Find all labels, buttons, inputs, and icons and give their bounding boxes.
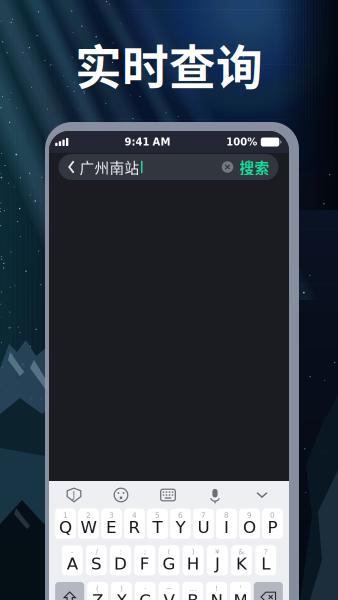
staticText: ¥ <box>215 547 220 556</box>
staticText: P <box>267 517 277 537</box>
staticText: / <box>95 547 97 556</box>
staticText: Z <box>92 591 103 600</box>
button[interactable]: 5 <box>147 509 168 539</box>
staticText: F <box>140 554 150 573</box>
staticText: 0 <box>270 511 275 519</box>
button[interactable]: Back <box>63 154 79 180</box>
staticText: ) <box>120 584 123 593</box>
staticText: Q <box>59 517 72 537</box>
staticText: 9:41 AM <box>124 136 170 148</box>
button[interactable]: ) <box>111 582 132 600</box>
staticText: O <box>243 517 256 537</box>
staticText: ) <box>192 547 195 556</box>
staticText: L <box>261 554 270 573</box>
button[interactable]: 搜索 <box>235 154 269 180</box>
button[interactable]: ' <box>230 582 251 600</box>
button[interactable]: 2 <box>78 509 99 539</box>
button[interactable]: Emoji <box>107 483 135 507</box>
staticText: ; <box>144 547 146 556</box>
staticText: 实时查询 <box>75 30 263 98</box>
staticText: ' <box>239 584 241 593</box>
staticText: N <box>211 591 223 600</box>
button[interactable]: 7 <box>193 509 214 539</box>
button[interactable]: - <box>62 545 83 575</box>
button[interactable]: 8 <box>216 509 237 539</box>
staticText: K <box>236 554 247 573</box>
staticText: & <box>239 547 245 556</box>
staticText: 2 <box>86 511 91 519</box>
button[interactable]: ; <box>134 545 155 575</box>
staticText: G <box>162 554 175 573</box>
button[interactable]: Keyboard layout <box>154 483 182 507</box>
staticText: 100% <box>226 136 257 148</box>
staticText: ? <box>264 547 268 556</box>
staticText: 3 <box>109 511 114 519</box>
button[interactable]: · <box>135 582 156 600</box>
staticText: 搜索 <box>239 156 269 178</box>
button[interactable]: 9 <box>239 509 260 539</box>
staticText: 9 <box>247 511 252 519</box>
staticText: U <box>197 517 209 537</box>
button[interactable]: Delete <box>254 582 283 600</box>
staticText: : <box>120 547 122 556</box>
button[interactable]: ) <box>183 545 204 575</box>
button[interactable]: … <box>182 582 203 600</box>
staticText: J <box>215 554 220 573</box>
staticText: R <box>128 517 140 537</box>
button[interactable]: ( <box>159 545 179 575</box>
button[interactable]: Clear text <box>219 154 235 180</box>
staticText: 1 <box>63 511 68 519</box>
button[interactable]: 6 <box>170 509 191 539</box>
staticText: ( <box>96 584 99 593</box>
staticText: 6 <box>178 511 183 519</box>
staticText: W <box>80 517 96 537</box>
staticText: H <box>187 554 200 573</box>
button[interactable]: 3 <box>101 509 122 539</box>
staticText: D <box>114 554 127 573</box>
button[interactable]: ? <box>255 545 276 575</box>
button[interactable]: Keyboard theme <box>60 483 88 507</box>
button[interactable]: Voice input <box>201 483 229 507</box>
staticText: · <box>144 584 146 593</box>
staticText: … <box>189 584 196 593</box>
staticText: 4 <box>132 511 137 519</box>
staticText: M <box>233 591 247 600</box>
staticText: 7 <box>201 511 206 519</box>
button[interactable]: ~ <box>159 582 179 600</box>
staticText: J <box>72 489 75 500</box>
button[interactable]: : <box>110 545 131 575</box>
staticText: C <box>139 591 151 600</box>
staticText: - <box>71 547 74 556</box>
staticText: V <box>163 591 174 600</box>
staticText: ~ <box>166 584 172 593</box>
staticText: 广州南站 <box>79 156 139 178</box>
button[interactable]: & <box>231 545 252 575</box>
button[interactable]: 4 <box>124 509 145 539</box>
button[interactable]: / <box>86 545 107 575</box>
staticText: Y <box>175 517 185 537</box>
staticText: T <box>152 517 162 537</box>
staticText: A <box>67 554 78 573</box>
button[interactable]: Hide keyboard <box>248 483 276 507</box>
staticText: S <box>91 554 102 573</box>
button[interactable]: 0 <box>262 509 283 539</box>
button[interactable]: 1 <box>55 509 76 539</box>
button[interactable]: ¥ <box>207 545 228 575</box>
button[interactable]: ! <box>206 582 227 600</box>
staticText: I <box>224 517 229 537</box>
staticText: ( <box>167 547 170 556</box>
staticText: B <box>187 591 198 600</box>
staticText: ! <box>215 584 218 593</box>
staticText: E <box>106 517 117 537</box>
staticText: 5 <box>155 511 160 519</box>
staticText: 8 <box>224 511 229 519</box>
button[interactable]: ( <box>87 582 108 600</box>
button[interactable]: Shift <box>55 582 84 600</box>
staticText: X <box>116 591 127 600</box>
